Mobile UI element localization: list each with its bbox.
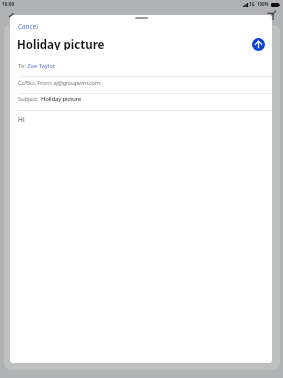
staticText: 10:00 (2, 1, 15, 7)
staticText: Subject: Holiday picture (18, 94, 81, 102)
staticText: 100% (257, 1, 269, 7)
staticText: Holiday picture (17, 37, 105, 50)
button[interactable]: To: Zoe Taylor (10, 58, 272, 76)
button[interactable]: Subject: Holiday picture (10, 93, 272, 110)
button[interactable]: Resize window (5, 10, 17, 22)
staticText: 3G (249, 1, 255, 7)
staticText: Cancel (18, 22, 38, 31)
button[interactable]: Send (252, 38, 265, 51)
button[interactable]: Expand window (265, 10, 277, 22)
staticText: Cc/Bcc, From: aj@groupwm.com (18, 78, 101, 86)
staticText: To: Zoe Taylor (18, 61, 56, 69)
button[interactable]: Cancel (14, 21, 42, 32)
button[interactable]: Cc/Bcc, From: aj@groupwm.com (10, 76, 272, 93)
staticText: Hi (18, 115, 25, 124)
